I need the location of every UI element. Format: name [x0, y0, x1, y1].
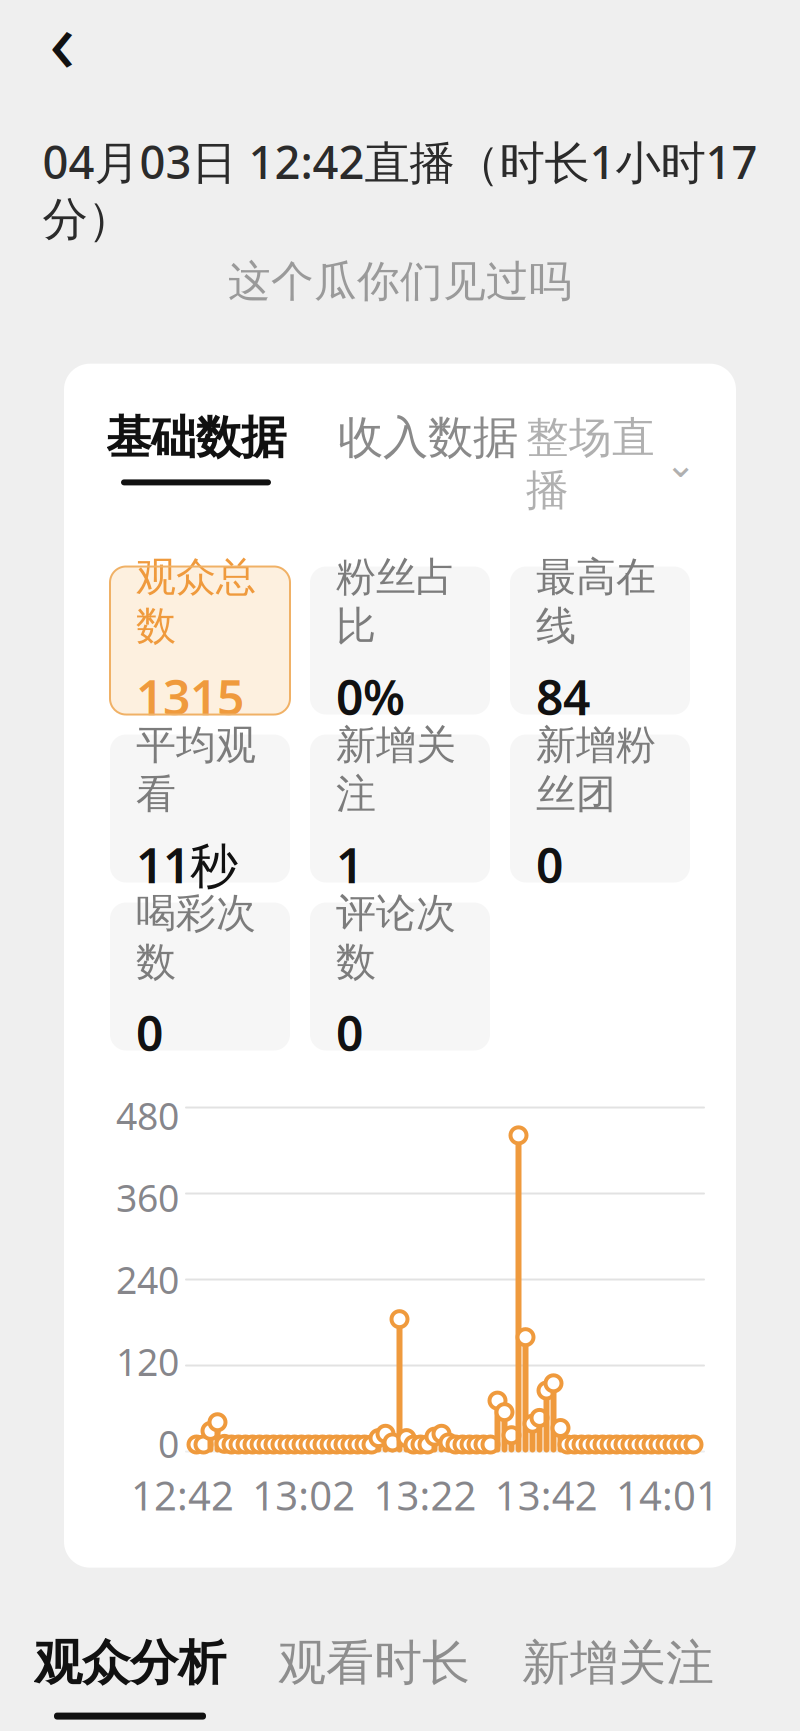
- staticText: 13:22: [373, 1468, 476, 1522]
- button[interactable]: 喝彩次数: [110, 902, 290, 1050]
- staticText: 新增关注: [522, 1634, 714, 1693]
- staticText: 喝彩次数: [136, 888, 256, 987]
- button[interactable]: 新增粉丝团: [510, 734, 690, 882]
- button[interactable]: 收入数据: [286, 410, 518, 485]
- button[interactable]: 新增关注: [310, 734, 490, 882]
- staticText: 平均观看: [136, 720, 256, 819]
- staticText: 评论次数: [336, 888, 456, 987]
- staticText: 0: [136, 1001, 163, 1064]
- staticText: 观众总数: [136, 552, 256, 651]
- staticText: ⌄: [665, 443, 696, 485]
- staticText: ‹: [49, 0, 75, 96]
- staticText: 观看时长: [278, 1634, 470, 1693]
- button[interactable]: 评论次数: [310, 902, 490, 1050]
- button[interactable]: 整场直播: [526, 410, 696, 516]
- staticText: 360: [116, 1173, 179, 1222]
- staticText: 11秒: [136, 833, 238, 896]
- staticText: 14:01: [616, 1468, 719, 1522]
- staticText: 0%: [336, 665, 405, 728]
- button[interactable]: Back: [20, 0, 104, 81]
- staticText: 13:02: [252, 1468, 355, 1522]
- button[interactable]: 观看时长: [278, 1634, 470, 1720]
- staticText: 整场直播: [526, 412, 655, 516]
- staticText: 480: [116, 1091, 179, 1140]
- staticText: 新增粉丝团: [536, 720, 656, 819]
- staticText: 12:42: [131, 1468, 234, 1522]
- staticText: 最高在线: [536, 552, 656, 651]
- staticText: 观众分析: [34, 1634, 226, 1693]
- staticText: 0: [336, 1001, 363, 1064]
- staticText: 1: [336, 833, 363, 896]
- button[interactable]: 粉丝占比: [310, 566, 490, 714]
- button[interactable]: 平均观看: [110, 734, 290, 882]
- button[interactable]: 最高在线: [510, 566, 690, 714]
- staticText: 0: [158, 1419, 179, 1468]
- staticText: 240: [116, 1255, 179, 1304]
- staticText: 04月03日 12:42直播（时长1小时17分）: [42, 131, 757, 247]
- button[interactable]: 新增关注: [522, 1634, 714, 1720]
- staticText: 0: [536, 833, 563, 896]
- staticText: 1315: [136, 665, 244, 728]
- staticText: 新增关注: [336, 720, 456, 819]
- staticText: 基础数据: [106, 410, 286, 465]
- button[interactable]: 观众分析: [34, 1634, 226, 1720]
- staticText: 粉丝占比: [336, 552, 456, 651]
- button[interactable]: 基础数据: [106, 410, 286, 485]
- staticText: 84: [536, 665, 590, 728]
- staticText: 收入数据: [338, 410, 518, 465]
- staticText: 120: [116, 1337, 179, 1386]
- button[interactable]: 观众总数: [110, 566, 290, 714]
- staticText: 13:42: [495, 1468, 598, 1522]
- staticText: 这个瓜你们见过吗: [228, 255, 572, 308]
